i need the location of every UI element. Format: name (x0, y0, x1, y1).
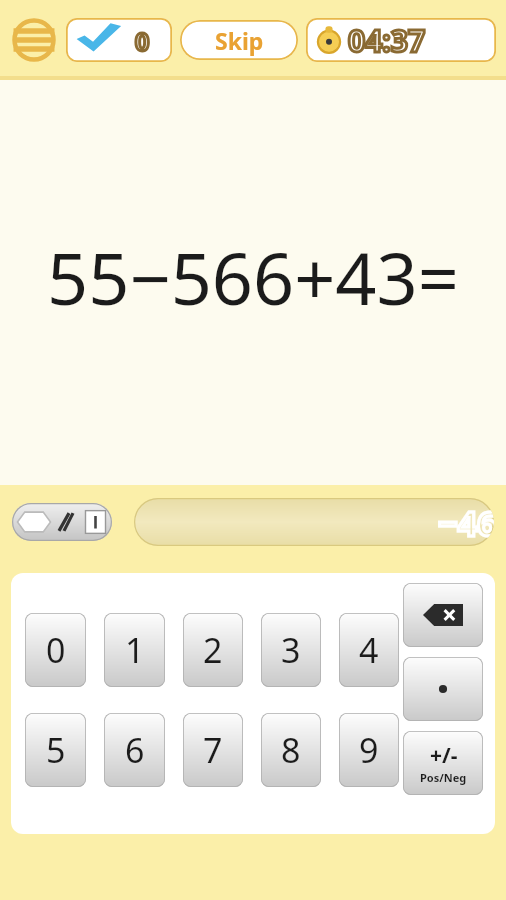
button[interactable]: 9 (339, 713, 399, 787)
button[interactable]: 8 (261, 713, 321, 787)
button[interactable]: 4 (339, 613, 399, 687)
button[interactable]: Backspace (403, 583, 483, 647)
staticText: 0 (46, 627, 66, 673)
button[interactable]: Skip (180, 20, 298, 60)
button[interactable]: Decimal point (403, 657, 483, 721)
staticText: +/- (430, 741, 458, 770)
staticText: 4 (359, 627, 379, 673)
staticText: 5 (46, 727, 66, 773)
button[interactable]: Answer field (134, 498, 494, 546)
button[interactable]: 0 (25, 613, 86, 687)
staticText: 55−566+43= (47, 228, 459, 326)
button[interactable]: Menu (10, 16, 58, 64)
button[interactable]: Time remaining 04:37 (306, 18, 496, 62)
button[interactable]: 7 (183, 713, 243, 787)
staticText: 6 (125, 727, 145, 773)
staticText: 8 (281, 727, 301, 773)
button[interactable]: 6 (104, 713, 165, 787)
button[interactable]: Toggle positive negative (403, 731, 483, 795)
button[interactable]: 5 (25, 713, 86, 787)
button[interactable]: 1 (104, 613, 165, 687)
staticText: Pos/Neg (420, 770, 467, 785)
staticText: 9 (359, 727, 379, 773)
staticText: Skip (215, 25, 264, 56)
staticText: 7 (203, 727, 223, 773)
button[interactable]: 2 (183, 613, 243, 687)
staticText: 1 (125, 627, 145, 673)
staticText: 3 (281, 627, 301, 673)
button[interactable]: Correct answers 0 (66, 18, 172, 62)
button[interactable]: 3 (261, 613, 321, 687)
button[interactable]: Switch answer format (12, 503, 112, 541)
staticText: 2 (203, 627, 223, 673)
